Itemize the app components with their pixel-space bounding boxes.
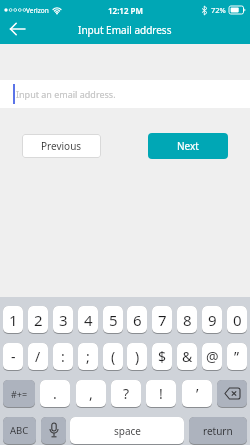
staticText: $ [158,347,167,366]
staticText: ’ [196,384,199,403]
staticText: , [89,384,93,403]
staticText: ABC [10,424,29,437]
button[interactable]: 8 [177,306,197,333]
button[interactable]: - [3,343,23,370]
button[interactable]: $ [152,343,172,370]
staticText: 3 [59,310,68,330]
button[interactable] [6,18,28,40]
button[interactable] [41,417,66,444]
button[interactable]: ; [78,343,98,370]
staticText: : [61,347,65,366]
staticText: / [35,347,41,366]
button[interactable]: 0 [227,306,247,333]
staticText: 72% [211,5,226,15]
staticText: ! [159,384,163,403]
staticText: 6 [133,310,142,330]
staticText: - [11,347,16,366]
button[interactable]: 6 [127,306,147,333]
button[interactable]: 2 [28,306,48,333]
button[interactable]: , [76,380,106,407]
staticText: 9 [208,310,217,330]
button[interactable]: ( [103,343,123,370]
staticText: 5 [109,310,118,330]
staticText: ” [234,347,240,366]
button[interactable]: 1 [3,306,23,333]
button[interactable]: @ [202,343,222,370]
button[interactable]: . [40,380,70,407]
button[interactable]: ! [146,380,176,407]
staticText: Previous [41,139,82,153]
button[interactable]: & [177,343,197,370]
staticText: . [53,384,57,403]
staticText: Verizon [26,6,49,15]
staticText: Next [177,139,199,153]
button[interactable] [217,380,247,407]
button[interactable]: 7 [152,306,172,333]
staticText: 4 [84,310,93,330]
staticText: ; [86,347,90,366]
staticText: 8 [183,310,192,330]
button[interactable]: ” [227,343,247,370]
staticText: return [203,424,233,438]
button[interactable]: ? [111,380,141,407]
button[interactable]: : [53,343,73,370]
button[interactable]: 4 [78,306,98,333]
button[interactable]: Previous [22,134,101,158]
staticText: 0 [233,310,242,330]
button[interactable]: ’ [182,380,212,407]
button[interactable]: #+= [3,380,35,407]
staticText: ( [111,347,116,366]
button[interactable]: ABC [3,417,36,444]
staticText: 7 [158,310,167,330]
button[interactable]: / [28,343,48,370]
button[interactable]: 3 [53,306,73,333]
staticText: 2 [34,310,43,330]
staticText: 12:12 PM [108,5,143,16]
staticText: Input Email address [78,23,172,37]
button[interactable]: Input an email address. [0,80,250,108]
button[interactable]: 9 [202,306,222,333]
staticText: Input an email address. [16,88,116,100]
staticText: @ [206,347,219,366]
button[interactable]: Next [148,133,228,159]
staticText: space [114,424,141,438]
staticText: & [182,347,193,366]
staticText: ? [123,384,130,403]
staticText: ) [135,347,140,366]
button[interactable]: ) [127,343,147,370]
button[interactable]: return [189,417,247,444]
button[interactable]: space [70,417,184,444]
button[interactable]: 5 [103,306,123,333]
staticText: 1 [9,310,18,330]
staticText: #+= [11,388,28,400]
